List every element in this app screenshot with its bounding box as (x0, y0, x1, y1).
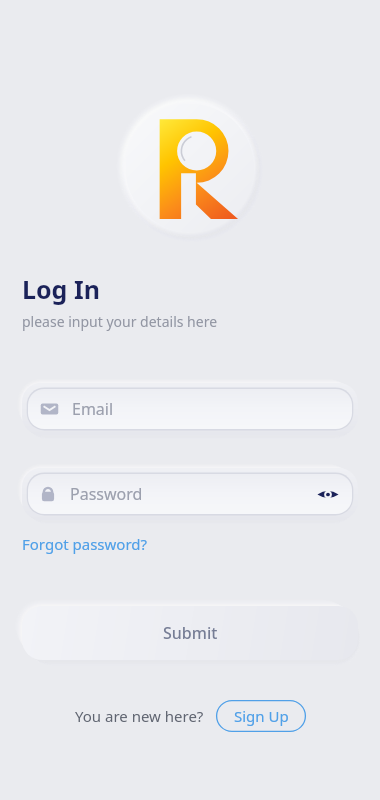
staticText: Submit (163, 622, 218, 644)
staticText: You are new here? (75, 706, 204, 726)
button[interactable]: Email (22, 383, 358, 435)
staticText: Log In (22, 272, 100, 306)
button[interactable]: Forgot password? (22, 532, 148, 556)
button[interactable]: Show password (316, 482, 340, 506)
staticText: please input your details here (22, 312, 218, 331)
button[interactable]: Password (22, 468, 358, 520)
staticText: Sign Up (234, 706, 289, 726)
staticText: Email (72, 398, 114, 420)
staticText: Forgot password? (22, 534, 148, 554)
button[interactable]: Sign Up (216, 700, 306, 732)
button[interactable]: Submit (22, 606, 358, 660)
staticText: Password (70, 483, 143, 505)
